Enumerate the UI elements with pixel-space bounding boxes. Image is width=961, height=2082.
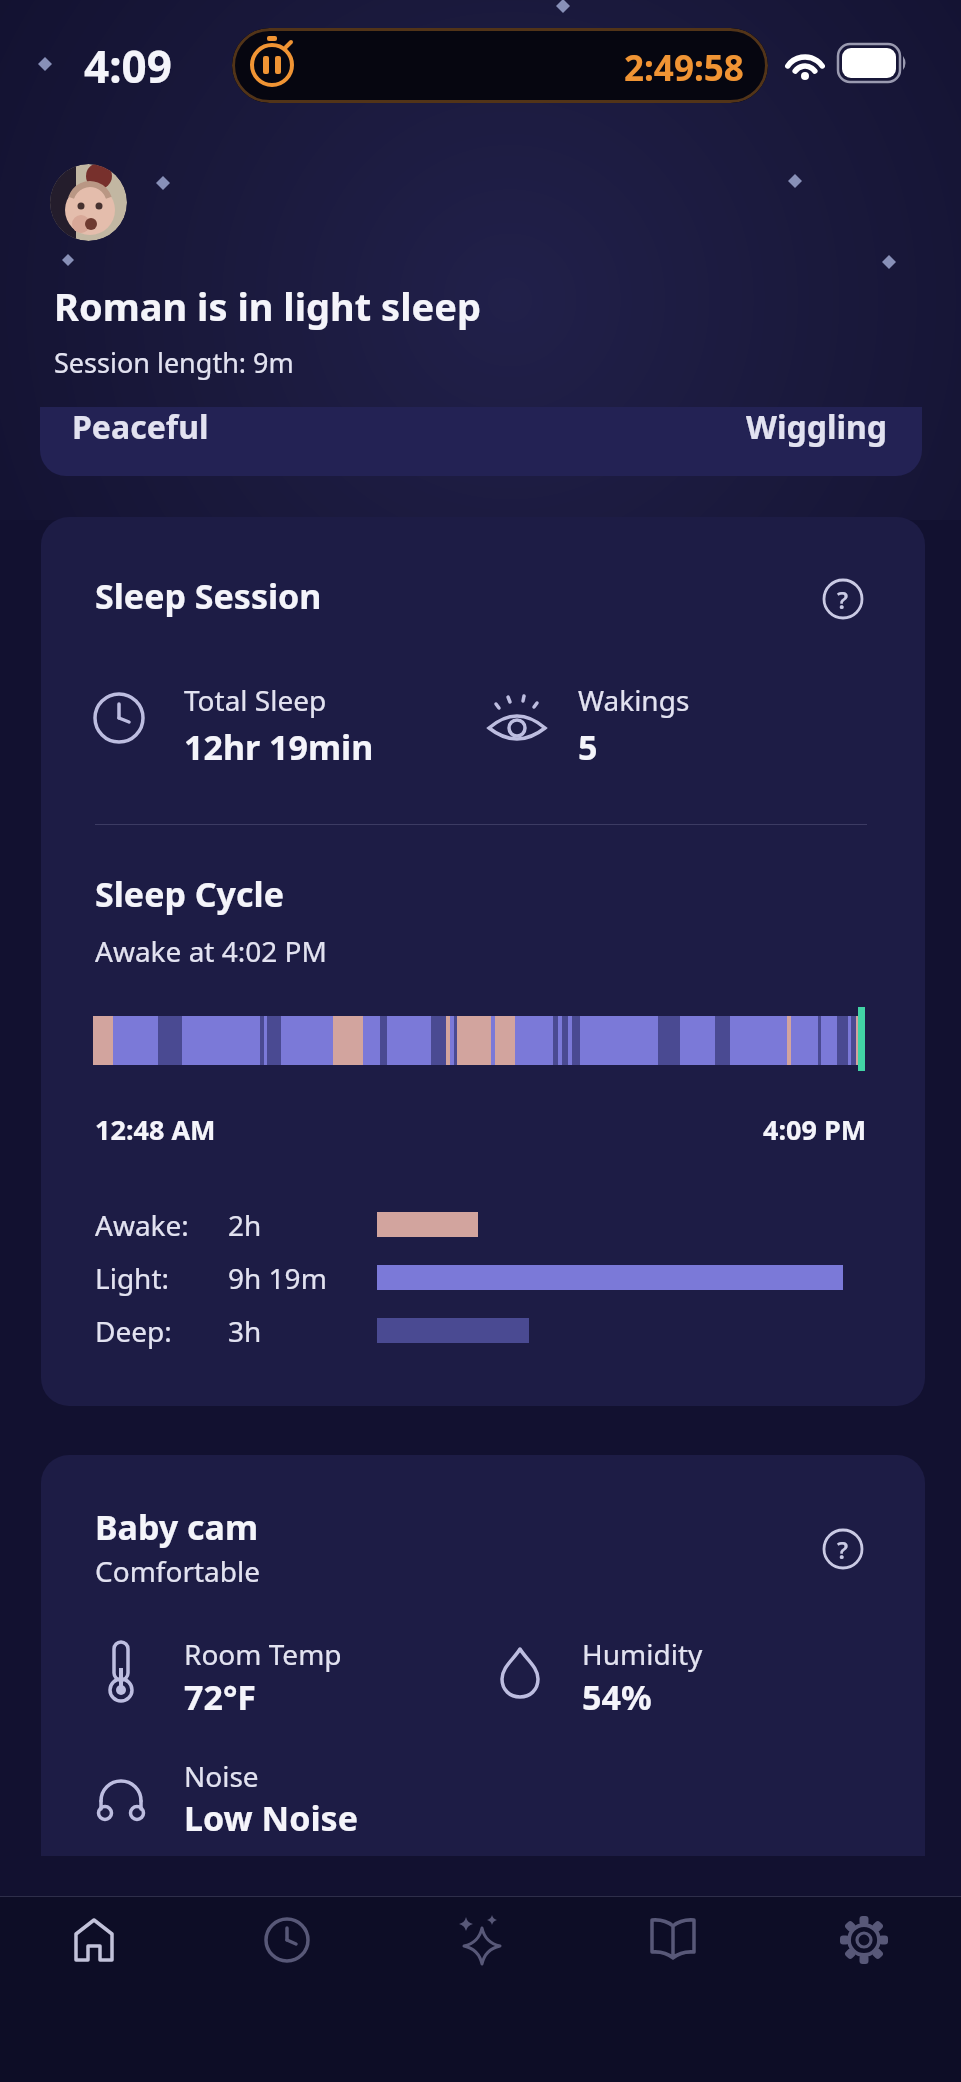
staticText: Deep: — [95, 1312, 172, 1350]
staticText: Baby cam — [95, 1504, 259, 1550]
button[interactable] — [50, 164, 127, 241]
staticText: 3h — [228, 1312, 262, 1350]
staticText: Light: — [95, 1259, 170, 1297]
staticText: 5 — [578, 724, 598, 770]
button[interactable] — [627, 1896, 719, 1984]
button[interactable]: ? — [821, 1527, 865, 1571]
button[interactable] — [48, 1896, 140, 1984]
staticText: Wiggling — [746, 407, 888, 449]
staticText: Peaceful — [72, 407, 209, 449]
button[interactable]: ? — [821, 577, 865, 621]
staticText: Roman is in light sleep — [54, 280, 481, 332]
staticText: 54% — [582, 1674, 652, 1720]
staticText: Awake: — [95, 1206, 189, 1244]
staticText: Session length: 9m — [54, 344, 294, 381]
staticText: Sleep Session — [95, 573, 322, 619]
staticText: Noise — [184, 1757, 259, 1795]
staticText: Comfortable — [95, 1552, 261, 1590]
staticText: 72°F — [184, 1674, 256, 1720]
staticText: Wakings — [578, 681, 690, 719]
staticText: 9h 19m — [228, 1259, 327, 1297]
staticText: ? — [837, 1533, 849, 1566]
staticText: ? — [837, 583, 849, 616]
staticText: 4:09 PM — [763, 1111, 867, 1148]
staticText: Awake at 4:02 PM — [95, 932, 327, 970]
staticText: 4:09 — [84, 36, 172, 96]
staticText: Total Sleep — [184, 681, 327, 719]
staticText: 12hr 19min — [184, 724, 374, 770]
staticText: 2:49:58 — [624, 44, 744, 92]
button[interactable] — [818, 1896, 910, 1984]
staticText: Low Noise — [184, 1795, 358, 1841]
button[interactable] — [241, 1896, 333, 1984]
staticText: Room Temp — [184, 1635, 342, 1673]
staticText: 12:48 AM — [95, 1111, 216, 1148]
button[interactable]: 2:49:58 — [232, 28, 768, 103]
staticText: Humidity — [582, 1635, 703, 1673]
staticText: 2h — [228, 1206, 262, 1244]
staticText: Sleep Cycle — [95, 871, 285, 917]
button[interactable] — [434, 1896, 526, 1984]
